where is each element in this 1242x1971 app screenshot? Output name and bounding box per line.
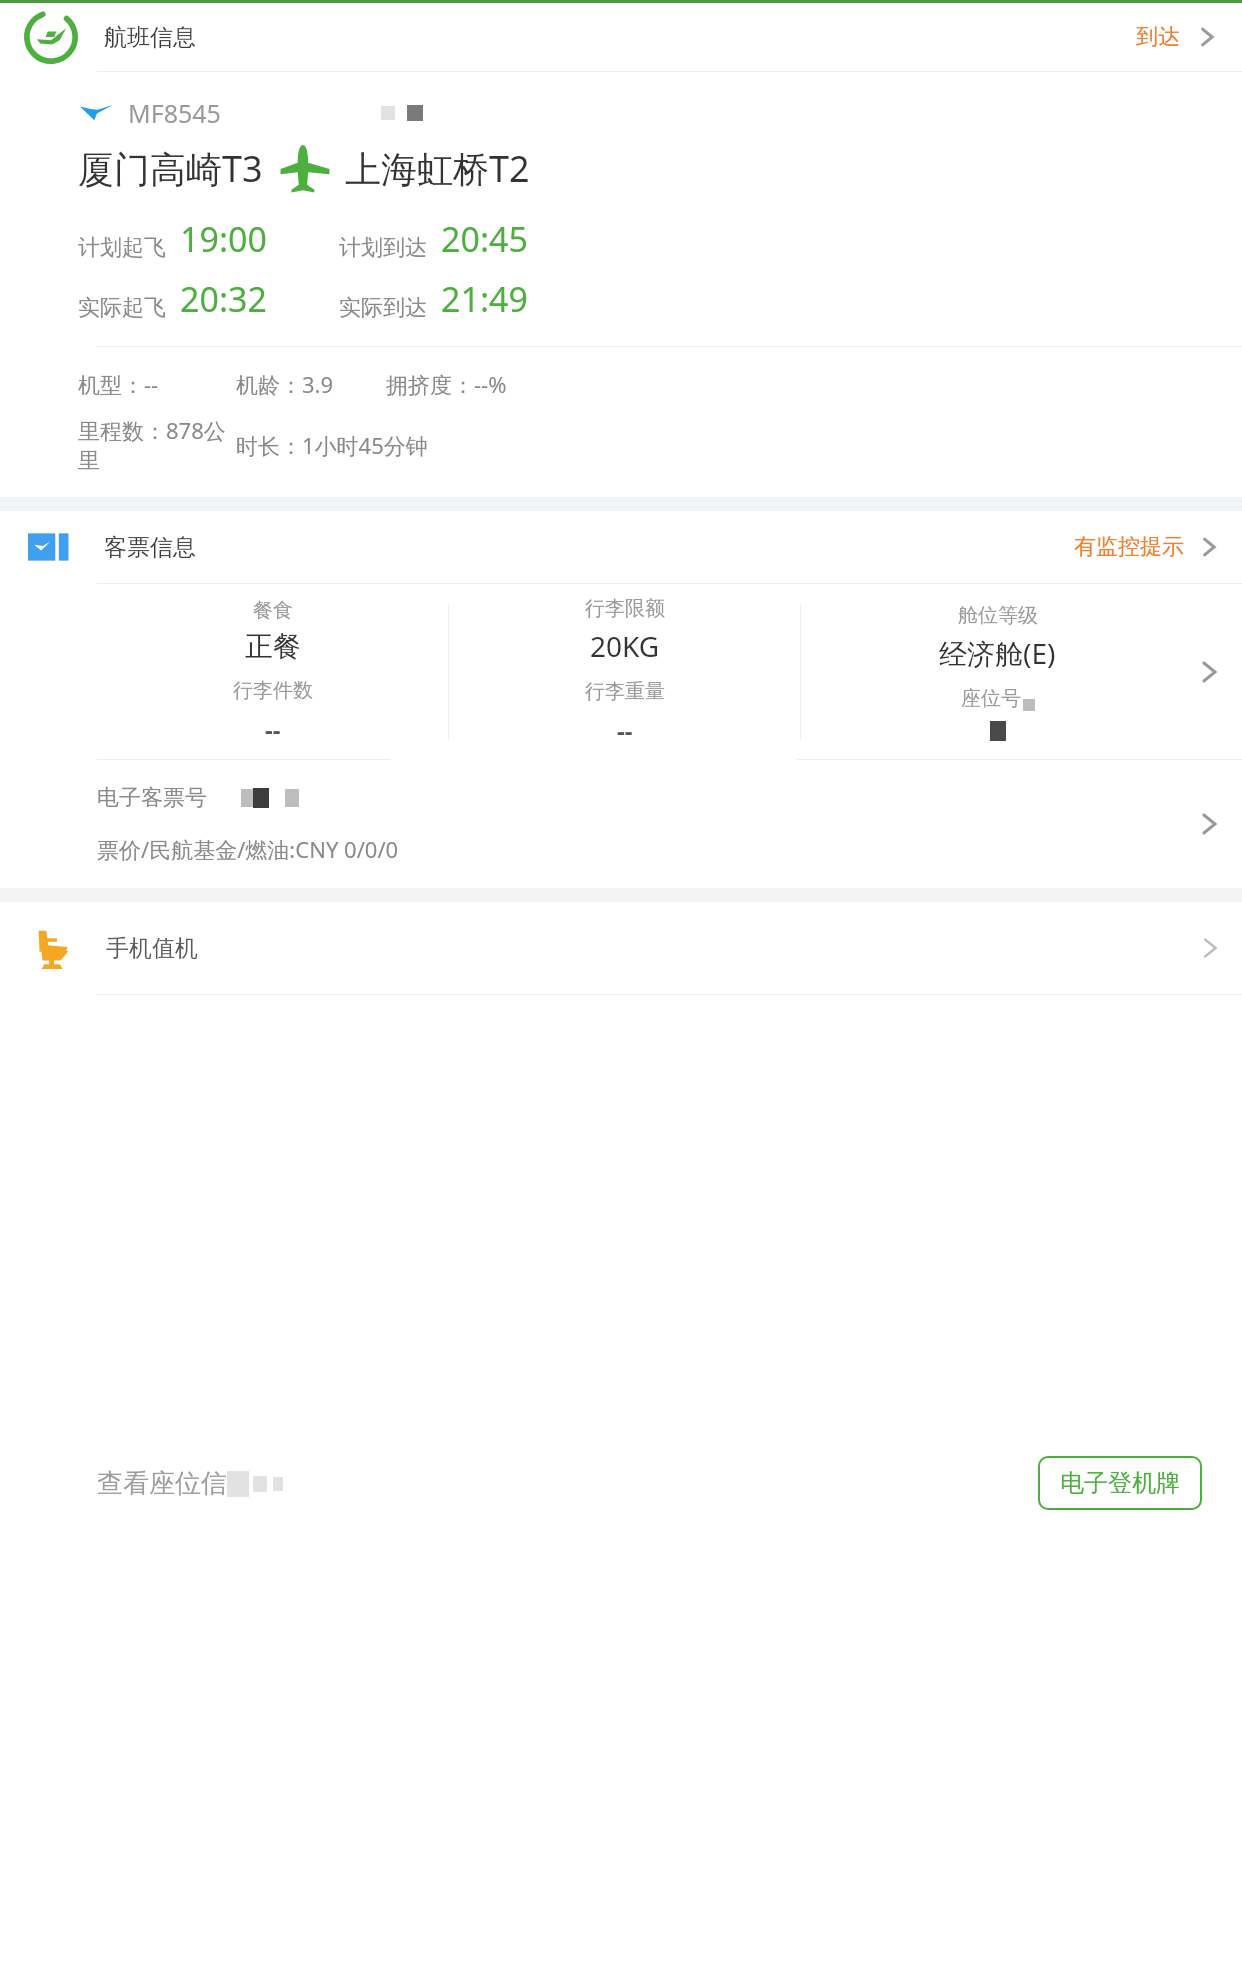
staticText: 舱位等级 <box>958 603 1038 628</box>
staticText: 经济舱(E) <box>939 634 1056 672</box>
staticText: 正餐 <box>245 629 301 664</box>
staticText: 厦门高崎T3 <box>78 144 263 193</box>
staticText: 行李限额 <box>585 596 665 621</box>
staticText: 计划到达 <box>339 234 427 262</box>
staticText: 时长：1小时45分钟 <box>236 430 428 460</box>
staticText: 拥挤度：--% <box>386 369 507 399</box>
staticText: 查看座位信 <box>97 1467 227 1500</box>
staticText: 有监控提示 <box>1074 533 1184 561</box>
staticText: 实际到达 <box>339 294 427 322</box>
staticText: 行李件数 <box>233 678 313 703</box>
staticText: 手机值机 <box>106 934 198 963</box>
staticText: 座位号 <box>961 686 1021 711</box>
button[interactable]: 餐食 <box>0 584 1242 759</box>
staticText: -- <box>265 713 281 746</box>
staticText: 到达 <box>1136 23 1180 51</box>
staticText: 电子登机牌 <box>1060 1468 1180 1498</box>
staticText: 计划起飞 <box>78 234 166 262</box>
staticText: -- <box>617 714 633 747</box>
button[interactable]: 查看座位信 <box>0 995 1242 1971</box>
staticText: 餐食 <box>253 598 293 623</box>
staticText: MF8545 <box>128 96 221 130</box>
staticText: 20:32 <box>180 276 267 322</box>
staticText: 机龄：3.9 <box>236 369 334 399</box>
button[interactable]: 手机值机 <box>0 902 1242 994</box>
staticText: 19:00 <box>180 216 267 262</box>
staticText: 实际起飞 <box>78 294 166 322</box>
staticText: 电子客票号 <box>97 784 207 812</box>
staticText: 里程数：878公里 <box>78 415 236 475</box>
staticText: 20:45 <box>441 216 528 262</box>
button[interactable]: 电子客票号 <box>0 760 1242 888</box>
staticText: 20KG <box>590 627 660 665</box>
staticText: 客票信息 <box>104 533 196 562</box>
button[interactable]: 客票信息 <box>0 511 1242 583</box>
staticText: 航班信息 <box>104 23 196 52</box>
button[interactable]: 航班信息 <box>0 3 1242 71</box>
staticText: 机型：-- <box>78 369 159 399</box>
staticText: 上海虹桥T2 <box>345 144 530 193</box>
staticText: 票价/民航基金/燃油:CNY 0/0/0 <box>97 834 399 864</box>
staticText: 21:49 <box>441 276 528 322</box>
staticText: 行李重量 <box>585 679 665 704</box>
button[interactable]: 电子登机牌 <box>1038 1456 1202 1510</box>
